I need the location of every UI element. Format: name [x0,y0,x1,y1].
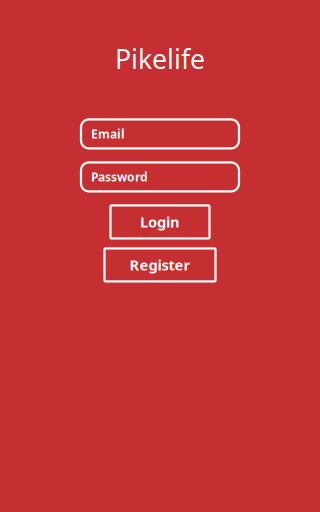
staticText: Login [140,212,180,232]
staticText: Register [129,255,190,275]
button[interactable]: Email [81,119,239,148]
staticText: Email [91,126,125,142]
button[interactable]: Register [104,248,215,281]
staticText: Password [91,169,148,185]
staticText: Pikelife [115,41,205,76]
button[interactable]: Password [81,162,239,191]
button[interactable]: Login [110,205,209,238]
